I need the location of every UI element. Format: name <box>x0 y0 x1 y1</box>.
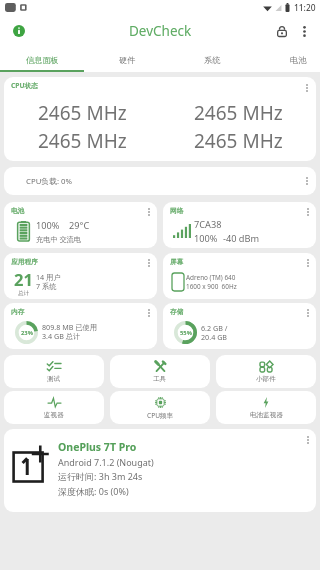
staticText: 809.8 MB 已使用 3.4 GB 总计 <box>42 322 97 342</box>
staticText: CPU状态 <box>11 81 38 90</box>
staticText: 存储 <box>170 308 184 316</box>
staticText: Android 7.1.2 (Nougat) 运行时间: 3h 3m 24s 深… <box>58 456 154 498</box>
button[interactable]: More options <box>292 19 316 43</box>
staticText: 系统 <box>204 55 221 65</box>
button[interactable]: 小部件 <box>216 355 316 388</box>
button[interactable]: 屏幕 <box>163 253 316 299</box>
button[interactable]: 工具 <box>110 355 210 388</box>
staticText: 电池监视器 <box>250 411 283 419</box>
button[interactable]: Unlock premium <box>270 19 294 43</box>
button[interactable]: 硬件 <box>85 47 170 72</box>
button[interactable]: More <box>300 80 314 96</box>
staticText: 应用程序 <box>11 258 38 266</box>
staticText: 55% <box>180 329 192 337</box>
staticText: 2465 MHz <box>38 128 127 154</box>
button[interactable]: 测试 <box>4 355 104 388</box>
button[interactable]: 信息面板 <box>0 47 85 72</box>
staticText: Adreno (TM) 640 1600 x 900 60Hz <box>186 273 237 291</box>
button[interactable]: More <box>142 305 156 321</box>
staticText: 信息面板 <box>26 55 59 65</box>
staticText: 充电中 交流电 <box>36 234 81 244</box>
button[interactable]: CPU频率 <box>110 391 210 424</box>
staticText: 硬件 <box>119 55 136 65</box>
button[interactable]: More <box>300 173 314 189</box>
staticText: 23% <box>21 329 33 337</box>
button[interactable]: 电池 <box>4 202 157 248</box>
staticText: 工具 <box>153 375 167 383</box>
button[interactable]: More <box>301 255 315 271</box>
staticText: 电池 <box>11 207 25 215</box>
button[interactable]: CPU负载: 0% <box>4 167 316 195</box>
staticText: 屏幕 <box>170 258 184 266</box>
staticText: 2465 MHz <box>194 100 283 126</box>
button[interactable]: 存储 <box>163 303 316 349</box>
staticText: 2465 MHz <box>38 100 127 126</box>
button[interactable]: 电池 <box>256 47 320 72</box>
staticText: -40 dBm <box>223 232 260 245</box>
staticText: 29°C <box>69 219 90 232</box>
button[interactable]: More <box>301 204 315 220</box>
button[interactable]: More <box>301 305 315 321</box>
staticText: CPU负载: 0% <box>26 176 72 187</box>
button[interactable]: More <box>142 255 156 271</box>
staticText: 6.2 GB / 20.4 GB <box>201 323 228 342</box>
staticText: 100% <box>36 219 60 232</box>
staticText: 测试 <box>47 375 61 383</box>
button[interactable]: More <box>4 429 316 512</box>
button[interactable]: 电池监视器 <box>216 391 316 424</box>
staticText: CPU频率 <box>147 411 174 420</box>
staticText: 2465 MHz <box>194 128 283 154</box>
button[interactable]: 网络 <box>163 202 316 248</box>
button[interactable]: More <box>301 432 315 448</box>
staticText: 内存 <box>11 308 25 316</box>
staticText: DevCheck <box>129 22 192 40</box>
staticText: 监视器 <box>44 411 64 419</box>
staticText: 100% <box>194 232 218 245</box>
staticText: 11:20 <box>294 2 316 13</box>
staticText: 电池 <box>290 55 307 65</box>
button[interactable]: 应用程序 <box>4 253 157 299</box>
button[interactable]: More <box>142 204 156 220</box>
staticText: 小部件 <box>256 375 276 383</box>
button[interactable]: 系统 <box>170 47 255 72</box>
staticText: 7CA38 <box>194 218 222 231</box>
staticText: OnePlus 7T Pro <box>58 440 137 454</box>
button[interactable]: 内存 <box>4 303 157 349</box>
button[interactable]: CPU状态 <box>4 77 316 161</box>
staticText: 网络 <box>170 207 184 215</box>
staticText: 14 用户 7 系统 <box>36 272 61 292</box>
staticText: 总计 <box>18 290 30 297</box>
staticText: 21 <box>14 268 33 290</box>
button[interactable]: App info <box>7 19 31 43</box>
button[interactable]: 监视器 <box>4 391 104 424</box>
